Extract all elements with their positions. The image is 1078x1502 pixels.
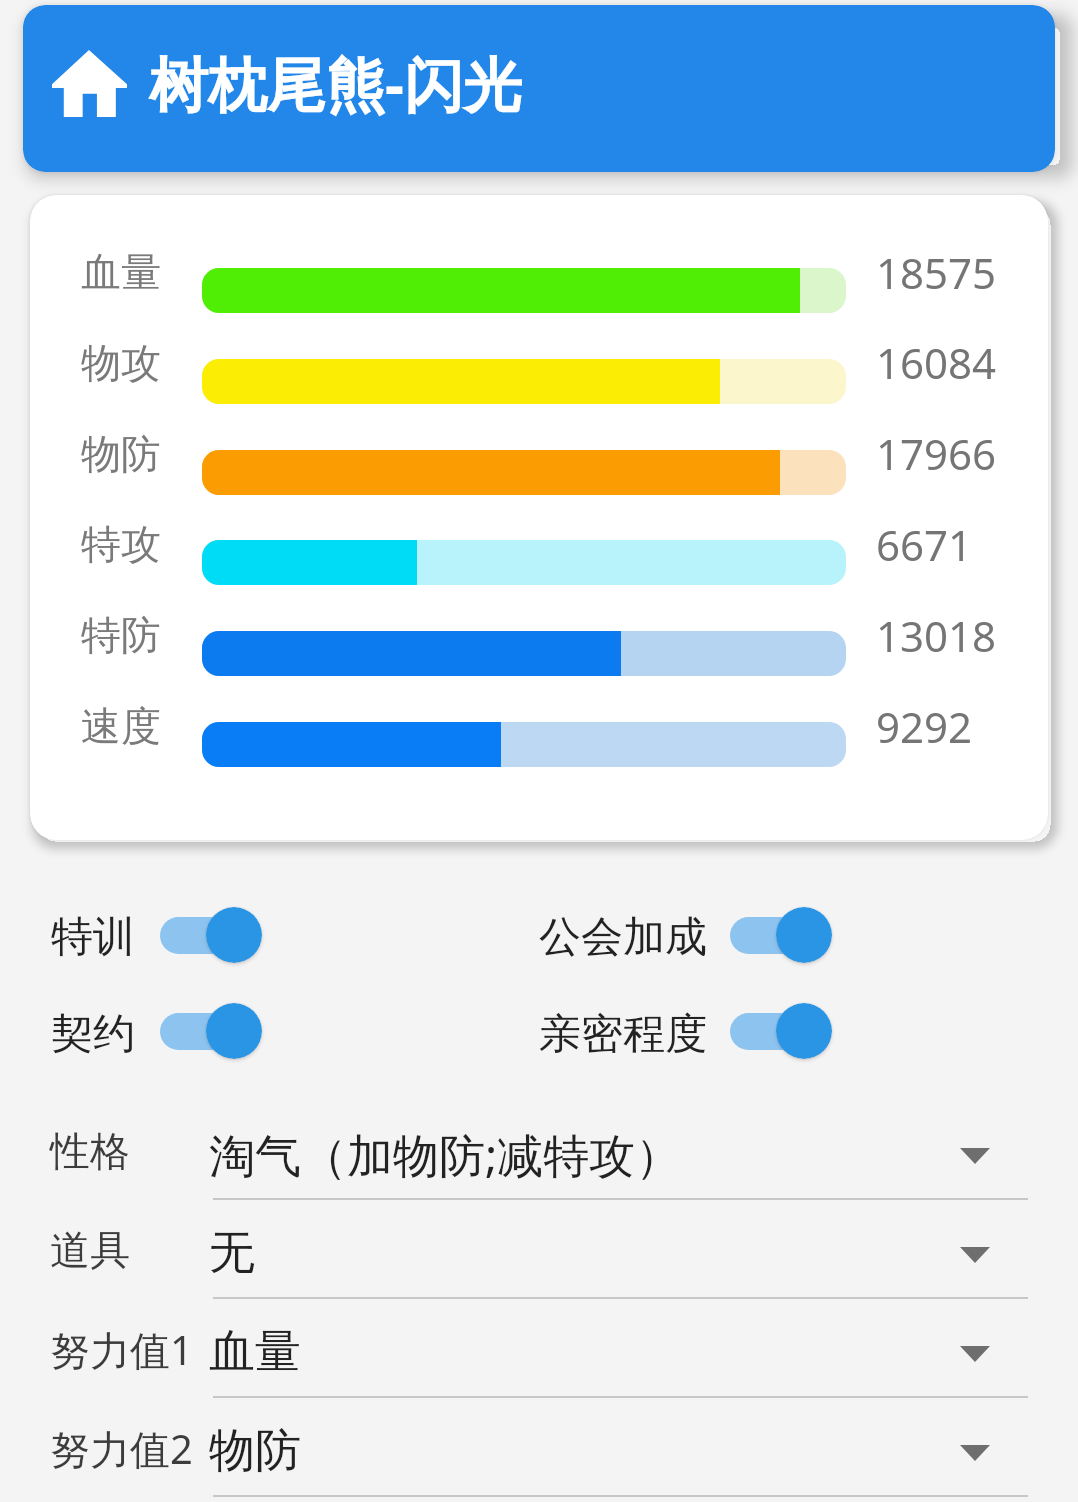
staticText: 6671 xyxy=(876,516,973,573)
staticText: 淘气（加物防;减特攻） xyxy=(209,1123,682,1186)
staticText: 努力值1 xyxy=(50,1322,193,1377)
button[interactable] xyxy=(0,1301,1078,1397)
button[interactable]: 树枕尾熊-闪光 xyxy=(23,5,1055,172)
button[interactable] xyxy=(730,906,832,964)
button[interactable] xyxy=(0,1400,1078,1496)
staticText: 血量 xyxy=(81,247,161,297)
staticText: 速度 xyxy=(81,701,161,751)
staticText: 17966 xyxy=(876,425,997,482)
staticText: 血量 xyxy=(209,1323,301,1381)
button[interactable] xyxy=(0,1103,1078,1199)
staticText: 9292 xyxy=(876,698,973,755)
staticText: 公会加成 xyxy=(539,911,707,964)
staticText: 亲密程度 xyxy=(539,1008,707,1061)
staticText: 物防 xyxy=(209,1422,301,1480)
staticText: 物防 xyxy=(81,429,161,479)
staticText: 树枕尾熊-闪光 xyxy=(149,43,522,124)
staticText: 无 xyxy=(209,1224,255,1282)
staticText: 特训 xyxy=(51,911,135,964)
staticText: 18575 xyxy=(876,244,997,301)
button[interactable] xyxy=(730,1002,832,1060)
staticText: 16084 xyxy=(876,334,997,391)
staticText: 契约 xyxy=(51,1008,135,1061)
button[interactable] xyxy=(0,1202,1078,1298)
staticText: 特防 xyxy=(81,610,161,660)
staticText: 物攻 xyxy=(81,338,161,388)
button[interactable] xyxy=(160,906,262,964)
staticText: 努力值2 xyxy=(50,1421,193,1476)
button[interactable] xyxy=(160,1002,262,1060)
staticText: 性格 xyxy=(50,1126,130,1176)
staticText: 道具 xyxy=(50,1225,130,1275)
staticText: 特攻 xyxy=(81,519,161,569)
staticText: 13018 xyxy=(876,607,997,664)
